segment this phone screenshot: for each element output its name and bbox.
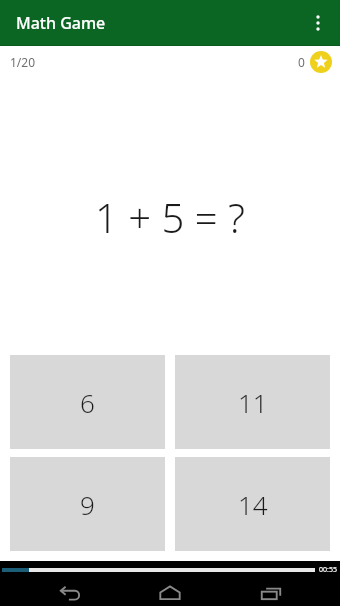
button[interactable]: 11	[175, 355, 330, 449]
button[interactable]: 6	[10, 355, 165, 449]
button[interactable]: Back	[39, 579, 101, 606]
button[interactable]: 14	[175, 457, 330, 551]
button[interactable]: Recents	[240, 579, 302, 606]
staticText: 1/20	[10, 54, 36, 70]
staticText: 9	[80, 487, 95, 522]
button[interactable]: More options	[296, 1, 340, 45]
button[interactable]: 9	[10, 457, 165, 551]
staticText: Math Game	[16, 12, 106, 34]
other: Score star	[310, 51, 332, 73]
staticText: 11	[238, 385, 268, 420]
button[interactable]: Home	[139, 579, 201, 606]
staticText: 6	[80, 385, 95, 420]
staticText: 00:55	[319, 565, 337, 575]
staticText: 1 + 5 = ?	[95, 190, 245, 244]
staticText: 14	[238, 487, 268, 522]
staticText: 0	[298, 54, 305, 70]
